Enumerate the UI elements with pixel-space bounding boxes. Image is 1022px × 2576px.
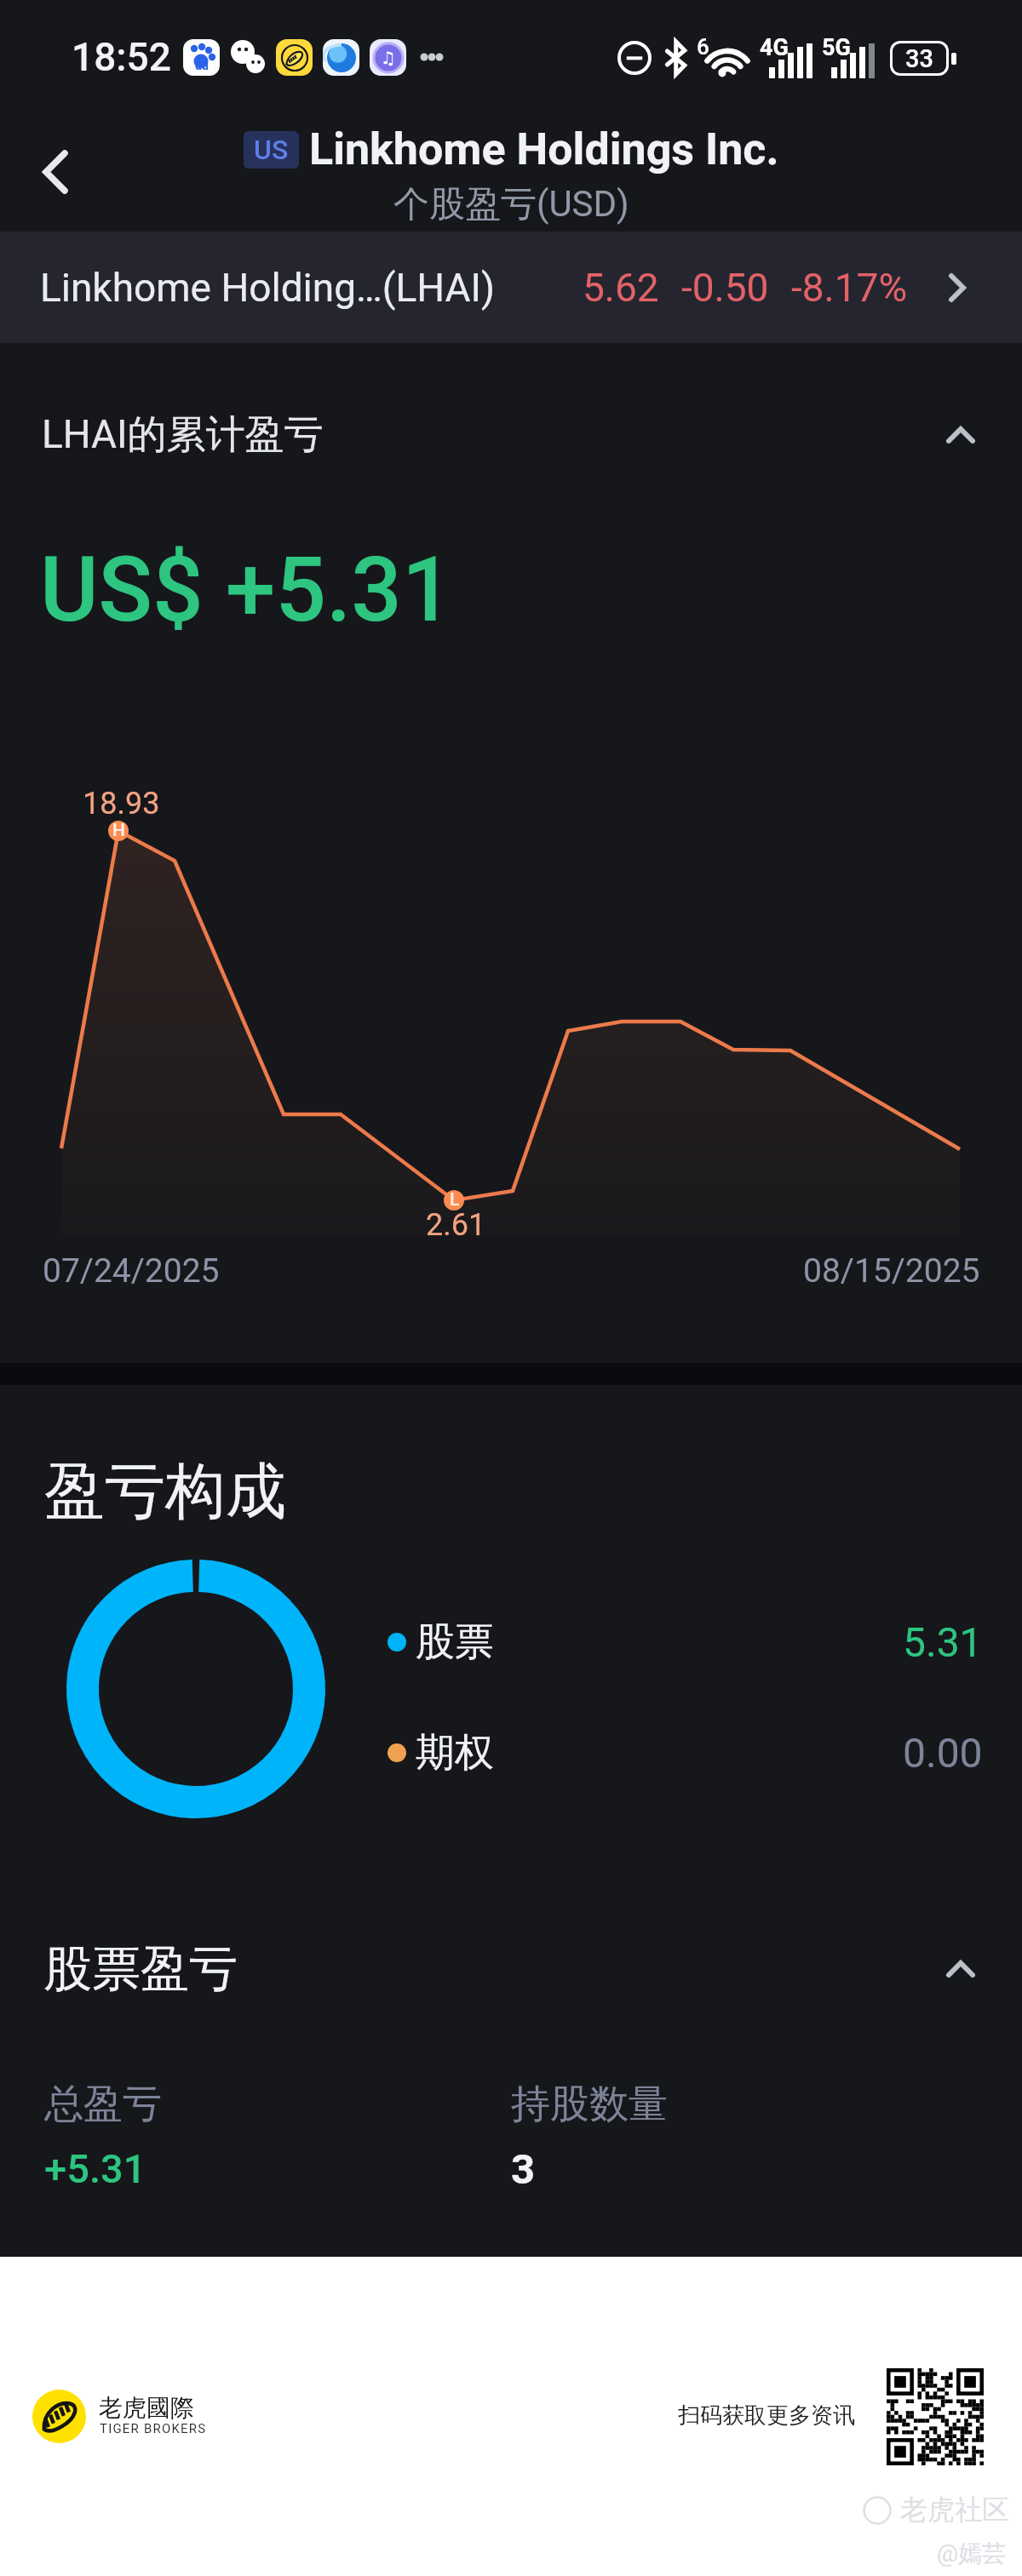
- button[interactable]: 股票盈亏: [0, 1915, 1022, 2023]
- staticText: 5.62: [583, 265, 659, 311]
- staticText: 股票盈亏: [43, 1938, 238, 2000]
- staticText: US: [254, 134, 289, 166]
- staticText: 盈亏构成: [44, 1454, 286, 1530]
- staticText: 4G: [760, 34, 789, 61]
- staticText: 期权: [416, 1728, 494, 1777]
- staticText: -8.17%: [791, 265, 908, 311]
- staticText: 5.31: [903, 1618, 983, 1666]
- staticText: 老虎社区: [900, 2493, 1009, 2527]
- other: Collapse section: [946, 426, 975, 444]
- staticText: Linkhome Holdings Inc.: [309, 123, 779, 175]
- staticText: H: [112, 820, 125, 841]
- staticText: 2.61: [426, 1207, 486, 1243]
- staticText: 个股盈亏(USD): [393, 182, 629, 227]
- staticText: 老虎國際: [99, 2393, 194, 2423]
- staticText: 持股数量: [511, 2080, 668, 2129]
- staticText: ♫: [381, 48, 396, 67]
- button[interactable]: LHAI的累计盈亏: [0, 380, 1022, 490]
- staticText: 07/24/2025: [43, 1251, 220, 1291]
- staticText: 股票: [416, 1617, 494, 1667]
- staticText: 扫码获取更多资讯: [678, 2401, 855, 2430]
- staticText: 3: [511, 2145, 536, 2194]
- other: Collapse section: [946, 1961, 975, 1978]
- staticText: @嫣芸: [937, 2539, 1007, 2568]
- staticText: 18.93: [83, 786, 160, 821]
- staticText: 5G: [822, 34, 851, 61]
- staticText: 6: [697, 34, 709, 60]
- staticText: 0.00: [903, 1729, 983, 1777]
- staticText: LHAI的累计盈亏: [42, 410, 324, 460]
- staticText: 18:52: [72, 34, 171, 80]
- staticText: -0.50: [681, 265, 769, 311]
- button[interactable]: Linkhome Holding…(LHAI): [0, 232, 1022, 343]
- button[interactable]: Back: [17, 134, 94, 210]
- staticText: du: [195, 59, 209, 72]
- staticText: Linkhome Holding…(LHAI): [40, 265, 496, 311]
- staticText: +5.31: [44, 2145, 146, 2192]
- staticText: US$ +5.31: [40, 538, 453, 643]
- staticText: 总盈亏: [44, 2080, 162, 2129]
- staticText: 08/15/2025: [803, 1251, 980, 1291]
- staticText: 33: [905, 44, 933, 73]
- staticText: TIGER BROKERS: [100, 2421, 207, 2436]
- staticText: L: [450, 1189, 460, 1211]
